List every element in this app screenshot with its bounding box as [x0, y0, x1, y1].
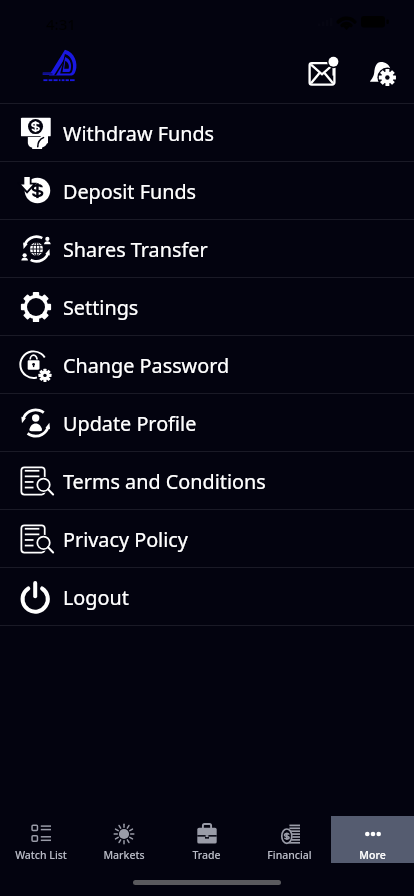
- button[interactable]: Privacy Policy: [0, 510, 414, 567]
- button[interactable]: Notification settings: [360, 52, 404, 96]
- button[interactable]: Terms and Conditions: [0, 452, 414, 509]
- button[interactable]: Financial: [248, 816, 331, 863]
- button[interactable]: Markets: [82, 816, 165, 863]
- staticText: Trade: [192, 848, 221, 862]
- staticText: Update Profile: [63, 410, 197, 437]
- button[interactable]: Shares Transfer: [0, 220, 414, 277]
- staticText: 4:31: [46, 14, 76, 34]
- staticText: Change Password: [63, 352, 230, 379]
- button[interactable]: Update Profile: [0, 394, 414, 451]
- button[interactable]: Logout: [0, 568, 414, 625]
- staticText: Privacy Policy: [63, 526, 188, 553]
- button[interactable]: Settings: [0, 278, 414, 335]
- staticText: More: [359, 848, 386, 862]
- staticText: Withdraw Funds: [63, 120, 215, 147]
- staticText: Financial: [267, 848, 312, 862]
- staticText: Watch List: [15, 848, 67, 862]
- staticText: Terms and Conditions: [63, 468, 266, 495]
- button[interactable]: Withdraw Funds: [0, 104, 414, 161]
- staticText: Deposit Funds: [63, 178, 197, 205]
- staticText: Logout: [63, 584, 129, 611]
- staticText: Markets: [103, 848, 145, 862]
- staticText: Shares Transfer: [63, 236, 208, 263]
- staticText: Settings: [63, 294, 139, 321]
- button[interactable]: Watch List: [0, 816, 82, 863]
- button[interactable]: Messages: [302, 52, 346, 96]
- button[interactable]: Trade: [165, 816, 248, 863]
- button[interactable]: Deposit Funds: [0, 162, 414, 219]
- button[interactable]: More: [331, 816, 414, 863]
- button[interactable]: Change Password: [0, 336, 414, 393]
